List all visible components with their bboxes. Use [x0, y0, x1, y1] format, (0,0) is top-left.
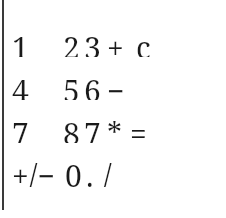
button[interactable]: multiply: [107, 113, 129, 143]
button[interactable]: decimal point: [86, 155, 102, 187]
staticText: 7: [12, 113, 29, 143]
staticText: /: [103, 155, 112, 187]
button[interactable]: divide: [103, 155, 125, 187]
staticText: 1: [12, 27, 29, 57]
staticText: 0: [65, 155, 82, 187]
button[interactable]: 7: [84, 113, 106, 143]
button[interactable]: plus: [107, 27, 131, 57]
button[interactable]: 6: [84, 70, 106, 100]
button[interactable]: plus minus: [12, 155, 64, 187]
button[interactable]: 3: [84, 27, 106, 57]
button[interactable]: minus: [107, 70, 131, 100]
staticText: 3: [84, 27, 101, 57]
button[interactable]: 2: [63, 27, 85, 57]
staticText: 2: [63, 27, 80, 57]
button[interactable]: 5: [63, 70, 85, 100]
staticText: 4: [12, 70, 29, 100]
staticText: +: [107, 27, 124, 57]
button[interactable]: 0: [65, 155, 87, 187]
staticText: *: [107, 113, 122, 143]
staticText: 8: [63, 113, 80, 143]
button[interactable]: clear: [136, 27, 158, 57]
staticText: 6: [84, 70, 101, 100]
staticText: −: [107, 70, 125, 100]
button[interactable]: 1: [12, 27, 34, 57]
staticText: 5: [63, 70, 80, 100]
staticText: =: [130, 113, 147, 143]
staticText: .: [86, 155, 94, 187]
staticText: c: [136, 27, 151, 57]
button[interactable]: 7: [12, 113, 34, 143]
button[interactable]: equals: [130, 113, 154, 143]
button[interactable]: 4: [12, 70, 34, 100]
button[interactable]: 8: [63, 113, 85, 143]
staticText: 7: [84, 113, 101, 143]
staticText: +/−: [12, 155, 55, 187]
